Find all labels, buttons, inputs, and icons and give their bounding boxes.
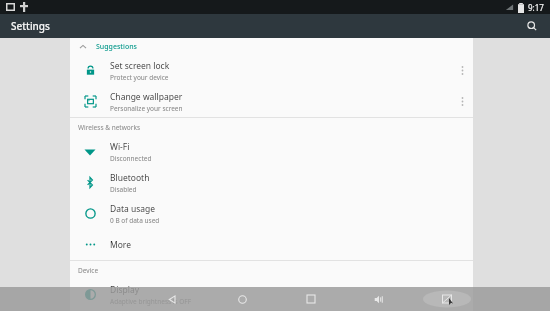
button[interactable]: Display: [70, 279, 473, 310]
button[interactable]: Bluetooth: [70, 167, 473, 198]
button[interactable]: Back: [160, 287, 184, 311]
button[interactable]: Volume: [366, 287, 390, 311]
staticText: Wi-Fi: [110, 141, 130, 153]
staticText: Display: [110, 284, 139, 296]
button[interactable]: More options: [451, 86, 473, 117]
staticText: Disabled: [110, 185, 137, 194]
staticText: Bluetooth: [110, 172, 150, 184]
button[interactable]: Screenshot: [423, 289, 471, 309]
staticText: Personalize your screen: [110, 104, 183, 113]
staticText: Settings: [11, 19, 50, 33]
staticText: Device: [78, 266, 99, 275]
staticText: Suggestions: [96, 42, 137, 52]
button[interactable]: More: [70, 229, 473, 260]
button[interactable]: Home: [230, 287, 254, 311]
staticText: More: [110, 239, 131, 251]
button[interactable]: Recent apps: [299, 287, 323, 311]
staticText: Disconnected: [110, 154, 152, 163]
button[interactable]: More options: [451, 55, 473, 86]
button[interactable]: Set screen lock: [70, 55, 473, 86]
button[interactable]: Data usage: [70, 198, 473, 229]
staticText: 9:17: [528, 2, 544, 13]
staticText: Set screen lock: [110, 60, 170, 72]
staticText: Wireless & networks: [78, 123, 140, 132]
button[interactable]: Change wallpaper: [70, 86, 473, 117]
staticText: Data usage: [110, 203, 156, 215]
button[interactable]: Wi-Fi: [70, 136, 473, 167]
staticText: Adaptive brightness is OFF: [110, 297, 192, 306]
button[interactable]: Search: [522, 16, 542, 36]
button[interactable]: Suggestions: [70, 38, 473, 55]
staticText: Change wallpaper: [110, 91, 183, 103]
staticText: 0 B of data used: [110, 216, 160, 225]
staticText: Protect your device: [110, 73, 169, 82]
